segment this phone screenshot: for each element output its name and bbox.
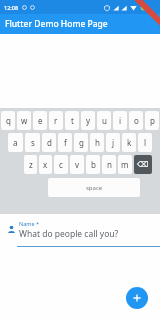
button[interactable]: Add — [126, 287, 148, 309]
button[interactable]: s — [25, 133, 40, 152]
button[interactable]: Backspace — [134, 155, 152, 174]
button[interactable]: h — [90, 133, 104, 152]
button[interactable]: q — [1, 111, 15, 130]
button[interactable]: n — [102, 155, 116, 174]
staticText: x — [43, 159, 48, 170]
staticText: ⌫ — [137, 160, 149, 169]
button[interactable]: i — [113, 111, 127, 130]
button[interactable]: o — [129, 111, 143, 130]
button[interactable]: r — [49, 111, 63, 130]
staticText: m — [121, 159, 129, 170]
button[interactable]: Name * — [19, 220, 160, 240]
staticText: k — [127, 137, 132, 148]
staticText: z — [29, 159, 33, 170]
button[interactable]: f — [58, 133, 72, 152]
staticText: 12:08 — [4, 4, 19, 11]
staticText: f — [64, 137, 67, 148]
staticText: c — [59, 159, 63, 170]
staticText: u — [102, 115, 107, 126]
button[interactable]: y — [81, 111, 95, 130]
staticText: w — [21, 115, 28, 126]
button[interactable]: p — [145, 111, 159, 130]
button[interactable]: a — [8, 133, 23, 152]
staticText: space — [86, 184, 103, 192]
button[interactable]: z — [24, 155, 37, 174]
staticText: h — [95, 137, 100, 148]
button[interactable]: w — [17, 111, 31, 130]
staticText: n — [107, 159, 112, 170]
staticText: a — [13, 137, 18, 148]
button[interactable]: x — [39, 155, 52, 174]
staticText: l — [144, 137, 147, 148]
staticText: d — [47, 137, 52, 148]
staticText: Flutter Demo Home Page — [5, 18, 108, 30]
staticText: g — [79, 137, 84, 148]
staticText: What do people call you? — [19, 228, 119, 240]
staticText: v — [75, 159, 80, 170]
other: Person — [7, 225, 16, 234]
button[interactable]: v — [70, 155, 84, 174]
staticText: t — [71, 115, 74, 126]
button[interactable]: space — [48, 178, 140, 197]
button[interactable]: t — [65, 111, 79, 130]
staticText: b — [91, 159, 96, 170]
button[interactable]: u — [97, 111, 111, 130]
button[interactable]: l — [138, 133, 152, 152]
button[interactable]: d — [42, 133, 56, 152]
button[interactable]: m — [118, 155, 132, 174]
staticText: r — [54, 115, 58, 126]
staticText: s — [31, 137, 35, 148]
button[interactable]: b — [86, 155, 100, 174]
staticText: o — [134, 115, 139, 126]
button[interactable]: k — [122, 133, 136, 152]
staticText: p — [150, 115, 155, 126]
button[interactable]: c — [54, 155, 68, 174]
staticText: i — [119, 115, 122, 126]
button[interactable]: e — [33, 111, 47, 130]
staticText: e — [38, 115, 43, 126]
button[interactable]: g — [74, 133, 88, 152]
staticText: Name * — [19, 220, 39, 227]
staticText: y — [86, 115, 91, 126]
staticText: q — [6, 115, 11, 126]
button[interactable]: j — [106, 133, 120, 152]
staticText: j — [112, 137, 115, 148]
